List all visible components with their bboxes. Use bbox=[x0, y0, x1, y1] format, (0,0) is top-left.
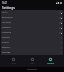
staticText: Sound bbox=[2, 41, 60, 44]
button[interactable]: Home bbox=[8, 55, 19, 67]
staticText: Location bbox=[2, 21, 59, 24]
staticText: Battery bbox=[2, 46, 60, 49]
button[interactable]: Battery bbox=[1, 45, 63, 50]
staticText: Display bbox=[2, 36, 60, 39]
button[interactable]: Sound bbox=[1, 40, 63, 45]
staticText: Home bbox=[11, 62, 17, 65]
button[interactable]: Apps bbox=[27, 55, 38, 67]
staticText: Apps bbox=[30, 62, 35, 65]
button[interactable]: Bluetooth bbox=[1, 15, 63, 20]
button[interactable]: Display bbox=[1, 35, 63, 40]
button[interactable]: Location bbox=[1, 20, 63, 25]
button[interactable]: Airplane bbox=[1, 30, 63, 35]
staticText: Airplane bbox=[2, 31, 59, 34]
staticText: Settings bbox=[47, 62, 55, 65]
button[interactable]: Hotspot bbox=[1, 25, 63, 30]
staticText: Storage bbox=[2, 51, 60, 54]
button[interactable]: Settings bbox=[45, 55, 56, 67]
button[interactable]: Storage bbox=[1, 50, 63, 55]
staticText: Hotspot bbox=[2, 26, 59, 29]
button[interactable]: Wi-Fi bbox=[1, 10, 63, 15]
staticText: Bluetooth bbox=[2, 16, 59, 19]
staticText: Wi-Fi bbox=[2, 11, 59, 14]
staticText: Settings bbox=[2, 6, 15, 10]
staticText: 9:41 bbox=[2, 1, 8, 5]
